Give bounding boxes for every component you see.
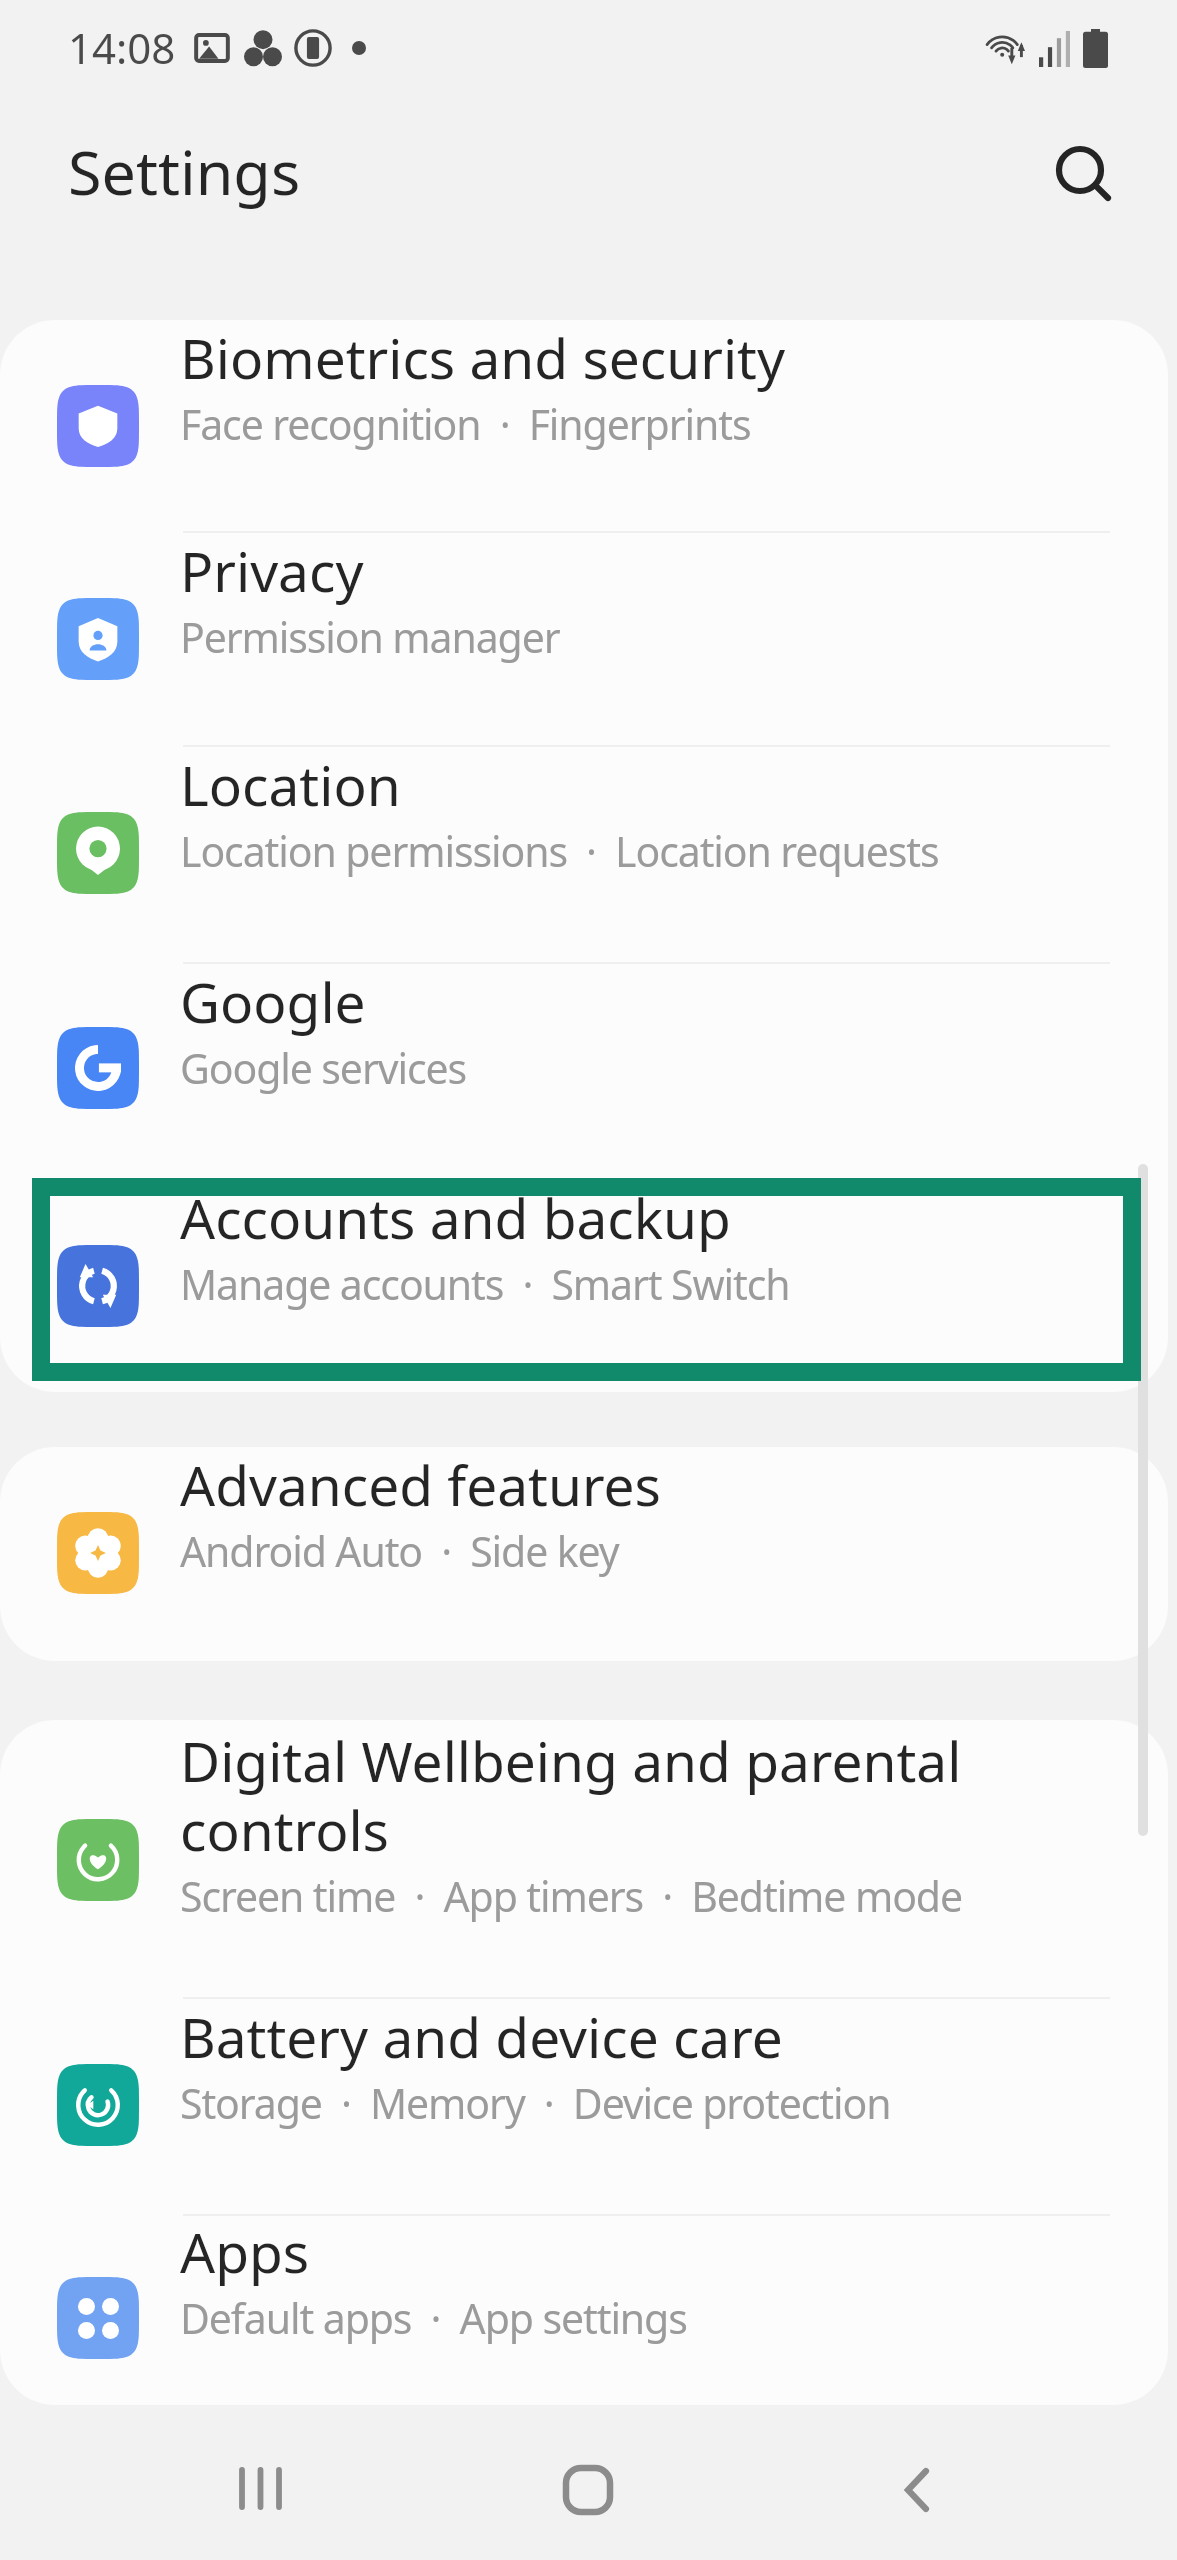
staticText: Google [180,964,366,1039]
staticText: Permission manager [180,609,560,665]
staticText: Privacy [180,533,364,608]
staticText: Location permissions · Location requests [180,823,939,879]
button[interactable]: Accounts and backup [0,1180,1168,1392]
staticText: Accounts and backup [180,1180,731,1255]
staticText: Location [180,747,401,822]
staticText: Apps [180,2214,310,2289]
staticText: Biometrics and security [180,320,786,395]
button[interactable]: Recent apps [196,2424,324,2552]
staticText: Battery and device care [180,1999,783,2074]
staticText: Manage accounts · Smart Switch [180,1256,790,1312]
staticText: Android Auto · Side key [180,1523,619,1579]
staticText: Advanced features [180,1447,661,1522]
button[interactable]: Apps [0,2216,1168,2405]
button[interactable]: Biometrics and security [0,320,1168,531]
button[interactable]: Search [1025,115,1145,235]
staticText: Google services [180,1040,467,1096]
button[interactable]: Advanced features [0,1447,1168,1661]
staticText: Settings [68,130,301,213]
staticText: Face recognition · Fingerprints [180,396,751,452]
staticText: 14:08 [68,19,176,76]
staticText: Digital Wellbeing and parental controls [180,1723,962,1867]
button[interactable]: Google [0,964,1168,1178]
staticText: Storage · Memory · Device protection [180,2075,891,2131]
button[interactable]: Location [0,747,1168,962]
button[interactable]: Privacy [0,533,1168,745]
staticText: Default apps · App settings [180,2290,687,2346]
button[interactable]: Home [524,2426,652,2554]
button[interactable]: Battery and device care [0,1999,1168,2214]
button[interactable]: Back [853,2426,981,2554]
button[interactable]: Digital Wellbeing and parental controls [0,1720,1168,1997]
staticText: Screen time · App timers · Bedtime mode [180,1868,963,1924]
